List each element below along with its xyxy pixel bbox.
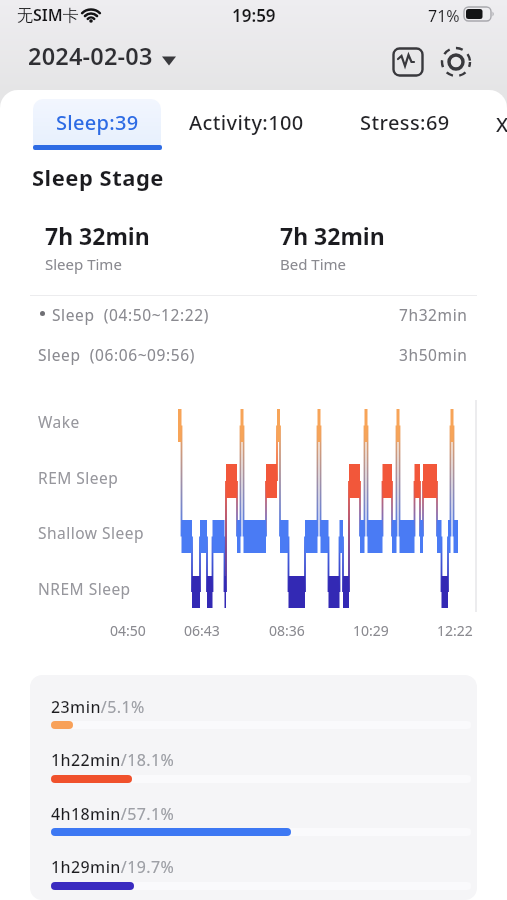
- staticText: 3h50min: [399, 344, 468, 365]
- staticText: X: [496, 111, 507, 138]
- staticText: 无SIM卡: [17, 4, 79, 26]
- staticText: 1h29min/19.7%: [51, 856, 175, 878]
- staticText: 12:22: [437, 621, 473, 640]
- staticText: Sleep:39: [56, 109, 139, 136]
- staticText: 10:29: [353, 621, 389, 640]
- staticText: 7h32min: [399, 304, 468, 325]
- button[interactable]: 2024-02-03: [20, 40, 190, 76]
- button[interactable]: Activity:100: [161, 108, 331, 136]
- staticText: 4h18min/57.1%: [51, 803, 175, 825]
- staticText: 2024-02-03: [28, 40, 153, 72]
- staticText: Shallow Sleep: [38, 522, 145, 543]
- staticText: Bed Time: [280, 254, 347, 274]
- button[interactable]: Sleep:39: [33, 99, 161, 145]
- staticText: 04:50: [110, 621, 146, 640]
- staticText: Stress:69: [360, 109, 450, 136]
- staticText: Activity:100: [189, 109, 304, 136]
- staticText: 7h 32min: [45, 220, 150, 251]
- staticText: Sleep (04:50~12:22): [52, 304, 209, 325]
- staticText: NREM Sleep: [38, 578, 131, 599]
- staticText: 08:36: [269, 621, 305, 640]
- staticText: Sleep Stage: [32, 162, 164, 192]
- staticText: 19:59: [232, 4, 276, 27]
- staticText: REM Sleep: [38, 467, 119, 488]
- staticText: 23min/5.1%: [51, 696, 145, 718]
- staticText: 7h 32min: [280, 220, 385, 251]
- button[interactable]: Stress:69: [330, 108, 480, 136]
- button[interactable]: [388, 42, 428, 82]
- staticText: Sleep Time: [45, 254, 122, 274]
- staticText: 1h22min/18.1%: [51, 749, 175, 771]
- staticText: 06:43: [184, 621, 220, 640]
- button[interactable]: [436, 42, 476, 82]
- staticText: Wake: [38, 411, 80, 432]
- staticText: Sleep (06:06~09:56): [38, 344, 195, 365]
- staticText: 71%: [428, 5, 460, 27]
